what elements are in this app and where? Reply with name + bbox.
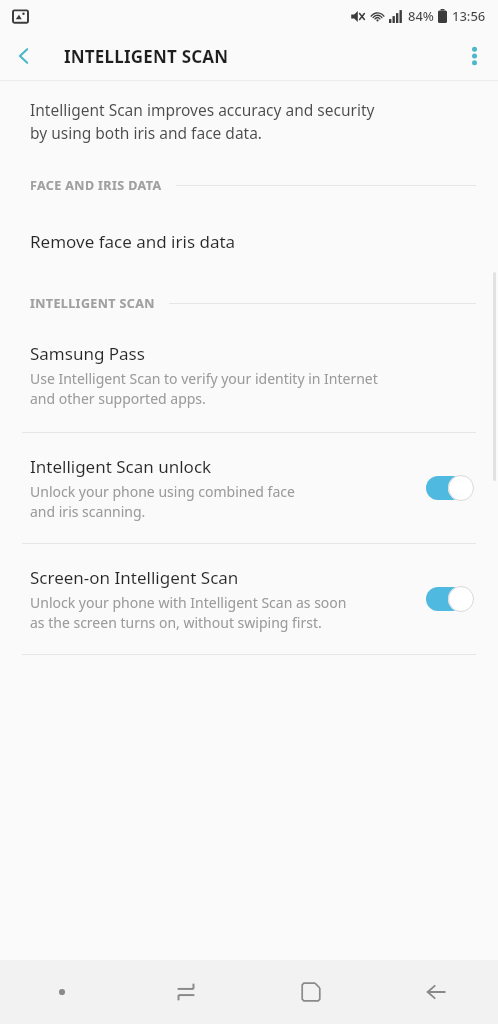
staticText: FACE AND IRIS DATA (30, 177, 162, 194)
button[interactable]: More options (450, 32, 498, 80)
button[interactable]: Home (248, 960, 373, 1024)
staticText: Screen-on Intelligent Scan (30, 566, 239, 589)
staticText: INTELLIGENT SCAN (30, 295, 155, 312)
staticText: Samsung Pass (30, 342, 145, 365)
button[interactable]: Samsung Pass (0, 338, 498, 422)
button[interactable]: Intelligent Scan unlock (0, 433, 498, 543)
staticText: 84% (408, 7, 434, 25)
staticText: Unlock your phone using combined face an… (30, 482, 295, 521)
button[interactable]: Screen-on Intelligent Scan (0, 544, 498, 654)
button[interactable]: Back (0, 32, 48, 80)
staticText: Intelligent Scan improves accuracy and s… (30, 99, 375, 144)
button[interactable]: Remove face and iris data (0, 224, 498, 271)
staticText: Unlock your phone with Intelligent Scan … (30, 593, 347, 632)
button[interactable]: Toggle (426, 475, 474, 501)
staticText: Intelligent Scan unlock (30, 455, 212, 478)
staticText: 13:56 (452, 7, 486, 25)
staticText: Use Intelligent Scan to verify your iden… (30, 369, 378, 408)
staticText: INTELLIGENT SCAN (64, 45, 229, 68)
button[interactable]: Back (373, 960, 498, 1024)
button[interactable]: Hide navigation bar (0, 960, 124, 1024)
staticText: Remove face and iris data (30, 230, 236, 253)
button[interactable]: Recent apps (124, 960, 248, 1024)
button[interactable]: Toggle (426, 586, 474, 612)
